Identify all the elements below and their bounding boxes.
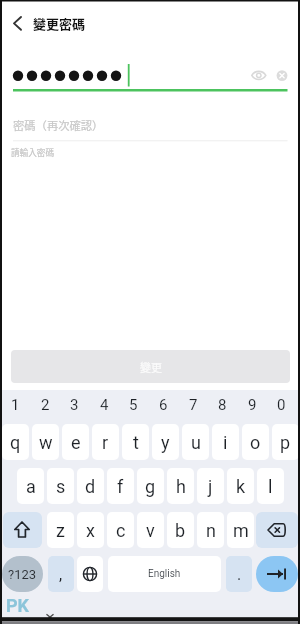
button[interactable]: z — [47, 512, 74, 548]
staticText: English — [148, 568, 181, 580]
staticText: j — [208, 476, 213, 497]
staticText: PK — [6, 595, 30, 616]
button[interactable]: 5 — [120, 392, 147, 417]
staticText: q — [10, 432, 21, 453]
button[interactable]: 0 — [268, 392, 295, 417]
button[interactable]: 8 — [209, 392, 236, 417]
button[interactable]: q — [2, 424, 29, 460]
staticText: s — [56, 476, 66, 497]
button[interactable]: s — [47, 468, 74, 504]
button[interactable]: t — [122, 424, 149, 460]
staticText: ?123 — [8, 567, 37, 582]
staticText: c — [116, 520, 126, 541]
button[interactable] — [256, 512, 298, 548]
button[interactable]: y — [152, 424, 179, 460]
staticText: g — [145, 476, 156, 497]
button[interactable]: l — [257, 468, 284, 504]
staticText: 6 — [159, 396, 168, 414]
button[interactable]: o — [242, 424, 269, 460]
button[interactable]: a — [17, 468, 44, 504]
button[interactable]: c — [107, 512, 134, 548]
staticText: . — [237, 565, 242, 584]
staticText: h — [176, 476, 186, 497]
staticText: d — [85, 476, 96, 497]
button[interactable] — [256, 556, 298, 592]
staticText: r — [102, 432, 109, 453]
button[interactable]: 4 — [91, 392, 118, 417]
button[interactable]: k — [227, 468, 254, 504]
button[interactable]: b — [167, 512, 194, 548]
staticText: t — [133, 432, 139, 453]
staticText: n — [206, 520, 216, 541]
button[interactable] — [246, 64, 270, 88]
button[interactable]: d — [77, 468, 104, 504]
button[interactable]: v — [137, 512, 164, 548]
staticText: x — [86, 520, 95, 541]
staticText: m — [233, 520, 249, 541]
button[interactable]: English — [108, 556, 221, 592]
button[interactable]: 1 — [2, 392, 29, 417]
staticText: l — [268, 476, 273, 497]
button[interactable] — [272, 64, 294, 88]
button[interactable]: r — [92, 424, 119, 460]
staticText: w — [39, 432, 53, 453]
staticText: 密碼（再次確認） — [13, 117, 104, 132]
staticText: o — [250, 432, 261, 453]
staticText: 4 — [100, 396, 109, 414]
staticText: 0 — [277, 396, 286, 414]
button[interactable]: j — [197, 468, 224, 504]
button[interactable]: 2 — [32, 392, 59, 417]
staticText: v — [146, 520, 155, 541]
button[interactable]: 3 — [61, 392, 88, 417]
button[interactable] — [77, 556, 103, 592]
staticText: 7 — [189, 396, 198, 414]
button[interactable]: f — [107, 468, 134, 504]
staticText: k — [236, 476, 246, 497]
button[interactable]: p — [272, 424, 299, 460]
staticText: 8 — [218, 396, 227, 414]
button[interactable]: g — [137, 468, 164, 504]
staticText: 請輸入密碼 — [11, 146, 54, 158]
button[interactable]: , — [48, 556, 74, 592]
staticText: , — [59, 565, 63, 584]
button[interactable]: 9 — [239, 392, 266, 417]
staticText: b — [175, 520, 186, 541]
button[interactable] — [10, 60, 240, 92]
staticText: u — [191, 432, 201, 453]
staticText: a — [26, 476, 36, 497]
button[interactable]: i — [212, 424, 239, 460]
staticText: e — [71, 432, 81, 453]
button[interactable] — [3, 512, 42, 548]
staticText: 2 — [41, 396, 50, 414]
staticText: 3 — [70, 396, 79, 414]
staticText: 9 — [248, 396, 257, 414]
button[interactable]: x — [77, 512, 104, 548]
button[interactable]: . — [226, 556, 252, 592]
staticText: y — [161, 432, 170, 453]
button[interactable]: w — [32, 424, 59, 460]
button[interactable]: m — [227, 512, 254, 548]
staticText: 5 — [129, 396, 138, 414]
button[interactable]: 6 — [150, 392, 177, 417]
staticText: i — [223, 432, 228, 453]
button[interactable]: u — [182, 424, 209, 460]
staticText: p — [280, 432, 291, 453]
staticText: f — [117, 476, 124, 497]
staticText: 1 — [11, 396, 20, 414]
button[interactable]: n — [197, 512, 224, 548]
button[interactable]: 7 — [180, 392, 207, 417]
staticText: z — [56, 520, 65, 541]
staticText: 變更 — [140, 359, 162, 375]
button[interactable] — [6, 9, 32, 35]
button[interactable]: h — [167, 468, 194, 504]
button[interactable]: e — [62, 424, 89, 460]
button[interactable]: ?123 — [2, 556, 43, 592]
staticText: 變更密碼 — [33, 14, 86, 31]
